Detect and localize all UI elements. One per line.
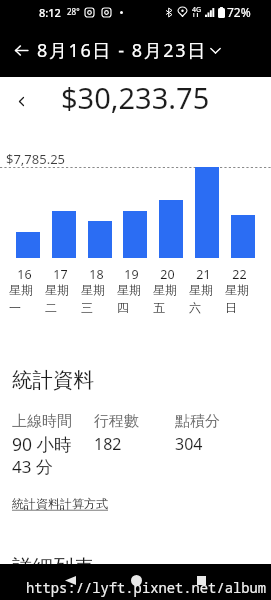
staticText: 8月16日 - 8月23日 (37, 38, 207, 63)
staticText: 4G (192, 5, 202, 15)
button[interactable]: Recent apps (185, 564, 217, 596)
staticText: $30,233.75 (61, 78, 210, 117)
staticText: 72% (227, 4, 251, 20)
staticText: 16 (17, 266, 32, 283)
staticText: 三 (81, 300, 93, 315)
staticText: 182 (94, 433, 122, 455)
staticText: 統計資料計算方式 (12, 496, 108, 511)
staticText: 二 (45, 300, 57, 315)
staticText: 18 (89, 266, 104, 283)
button[interactable]: Home (120, 564, 152, 596)
staticText: $7,785.25 (6, 150, 66, 168)
button[interactable]: 8月16日 - 8月23日 (37, 38, 221, 63)
staticText: 19 (124, 266, 139, 283)
staticText: 一 (9, 300, 21, 315)
staticText: 21 (196, 266, 211, 283)
button[interactable]: 統計資料計算方式 (12, 496, 108, 511)
staticText: https://lyft.pixnet.net/album (26, 578, 267, 597)
staticText: 詳細列表 (12, 554, 94, 580)
staticText: 星期 (81, 282, 105, 297)
staticText: 90 小時 (12, 432, 72, 456)
staticText: 星期 (225, 282, 249, 297)
staticText: 8:12 (39, 5, 61, 20)
staticText: 星期 (189, 282, 213, 297)
staticText: 20 (160, 266, 175, 283)
button[interactable]: Back (54, 564, 86, 596)
staticText: 行程數 (94, 412, 139, 431)
staticText: 五 (153, 300, 165, 315)
staticText: 統計資料 (12, 367, 94, 393)
staticText: 304 (175, 433, 203, 455)
staticText: 星期 (9, 282, 33, 297)
staticText: 點積分 (175, 412, 220, 431)
staticText: 四 (117, 300, 129, 315)
staticText: 28° (67, 6, 80, 17)
button[interactable]: Back (9, 38, 34, 63)
staticText: 43 分 (12, 455, 53, 478)
staticText: 22 (232, 266, 247, 283)
staticText: 星期 (117, 282, 141, 297)
staticText: 17 (53, 266, 68, 283)
staticText: 日 (225, 300, 237, 315)
staticText: 上線時間 (12, 412, 72, 431)
staticText: 星期 (45, 282, 69, 297)
staticText: 六 (189, 300, 201, 315)
staticText: 星期 (153, 282, 177, 297)
button[interactable]: Previous week (12, 92, 30, 110)
